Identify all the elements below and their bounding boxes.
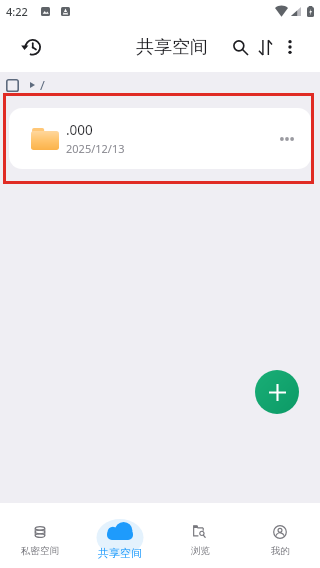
button[interactable]: / xyxy=(30,74,45,95)
button[interactable]: Sort xyxy=(250,32,280,62)
staticText: 2025/12/13 xyxy=(66,141,125,156)
button[interactable]: Search xyxy=(225,32,255,62)
staticText: 共享空间 xyxy=(98,546,142,560)
staticText: 我的 xyxy=(271,545,290,557)
staticText: 浏览 xyxy=(191,545,210,557)
button[interactable]: Add xyxy=(255,370,299,414)
button[interactable]: 我的 xyxy=(240,503,320,568)
button[interactable]: Select all xyxy=(2,75,23,96)
button[interactable]: 共享空间 xyxy=(80,503,160,568)
staticText: / xyxy=(40,76,45,94)
staticText: 共享空间 xyxy=(136,36,208,59)
button[interactable]: History xyxy=(13,30,47,64)
staticText: .000 xyxy=(66,121,93,139)
staticText: 4:22 xyxy=(6,4,28,19)
button[interactable]: 浏览 xyxy=(160,503,240,568)
button[interactable]: More options xyxy=(275,32,305,62)
button[interactable]: More xyxy=(274,126,300,152)
button[interactable]: .000 xyxy=(9,108,311,169)
button[interactable]: 私密空间 xyxy=(0,503,80,568)
staticText: 私密空间 xyxy=(21,545,59,557)
